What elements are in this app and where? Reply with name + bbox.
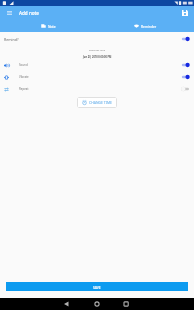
button[interactable]: On <box>180 34 191 44</box>
button[interactable]: On <box>180 72 191 82</box>
staticText: Jun 20, 2018 8:00:00 PM <box>83 55 112 58</box>
button[interactable]: On <box>180 60 191 70</box>
button[interactable]: CHANGE TIME <box>77 97 117 108</box>
staticText: Reminder time <box>89 49 106 52</box>
button[interactable]: Off <box>180 84 191 94</box>
button[interactable]: Sound <box>0 59 194 71</box>
staticText: Vibrate <box>19 75 29 79</box>
staticText: SAVE <box>93 285 101 289</box>
staticText: CHANGE TIME <box>89 100 112 105</box>
button[interactable]: Menu <box>0 6 18 20</box>
button[interactable]: Vibrate <box>0 71 194 83</box>
button[interactable]: Save note <box>176 6 194 20</box>
staticText: Remind? <box>4 37 19 42</box>
button[interactable]: Note <box>0 20 97 32</box>
button[interactable]: Repeat <box>0 83 194 95</box>
button[interactable]: Remind? <box>0 33 194 45</box>
staticText: Add note <box>19 10 39 16</box>
staticText: Repeat <box>19 87 29 91</box>
staticText: Reminder <box>141 24 157 28</box>
staticText: Note <box>48 24 56 28</box>
staticText: Sound <box>19 63 28 67</box>
button[interactable]: Reminder <box>97 20 194 32</box>
button[interactable]: SAVE <box>6 282 188 291</box>
